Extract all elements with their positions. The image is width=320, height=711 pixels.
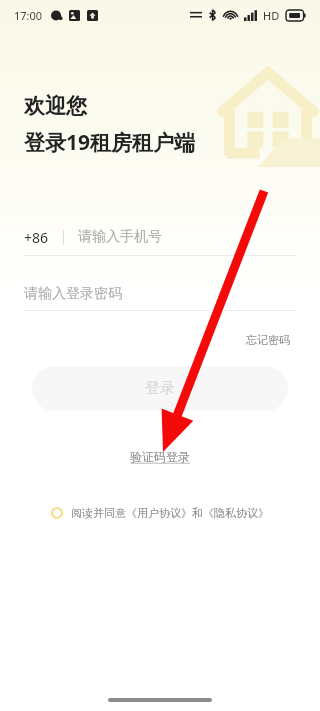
staticText: 验证码登录 [130, 449, 190, 464]
staticText: +86 [24, 228, 49, 247]
staticText: 请输入登录密码 [24, 285, 122, 303]
button[interactable]: 验证码登录 [122, 445, 198, 468]
staticText: 请输入手机号 [78, 228, 162, 246]
button[interactable]: 请输入登录密码 [24, 278, 296, 310]
button[interactable]: +86 [24, 219, 296, 255]
staticText: 登录19租房租户端 [24, 128, 196, 157]
button[interactable]: 登录 [32, 366, 288, 411]
button[interactable]: 阅读并同意《用户协议》和《隐私协议》 [0, 506, 320, 520]
staticText: 忘记密码 [246, 333, 290, 347]
staticText: 17:00 [14, 8, 43, 23]
staticText: 欢迎您 [24, 93, 87, 119]
button[interactable]: 忘记密码 [240, 327, 296, 353]
staticText: 阅读并同意《用户协议》和《隐私协议》 [71, 506, 269, 520]
staticText: 登录 [145, 379, 175, 398]
staticText: HD [263, 8, 280, 23]
